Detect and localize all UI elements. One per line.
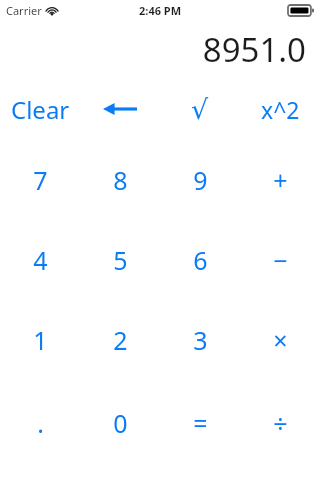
staticText: 7 [33,163,48,197]
button[interactable]: − [240,220,320,300]
staticText: . [37,406,44,440]
button[interactable]: ÷ [240,380,320,466]
staticText: 4 [33,243,48,277]
staticText: 3 [193,323,208,357]
button[interactable]: 8 [80,140,160,220]
button[interactable]: 5 [80,220,160,300]
button[interactable]: Backspace [80,78,160,140]
staticText: x^2 [261,94,300,125]
button[interactable]: 7 [0,140,80,220]
staticText: Clear [11,93,70,126]
staticText: = [193,406,208,440]
button[interactable]: × [240,300,320,380]
staticText: + [273,163,288,197]
staticText: 8 [113,163,128,197]
staticText: 2 [113,323,128,357]
button[interactable]: + [240,140,320,220]
button[interactable]: . [0,380,80,466]
staticText: 8951.0 [202,27,306,72]
button[interactable]: 2 [80,300,160,380]
staticText: − [273,243,288,277]
staticText: ÷ [273,406,288,440]
button[interactable]: 9 [160,140,240,220]
staticText: 9 [193,163,208,197]
button[interactable]: Clear [0,78,80,140]
staticText: 1 [33,323,48,357]
button[interactable]: 1 [0,300,80,380]
button[interactable]: 3 [160,300,240,380]
staticText: × [273,323,288,357]
button[interactable]: Square root [160,78,240,140]
staticText: √ [191,94,209,125]
button[interactable]: 0 [80,380,160,466]
button[interactable]: x^2 [240,78,320,140]
staticText: Carrier [6,3,42,18]
button[interactable]: 4 [0,220,80,300]
button[interactable]: 6 [160,220,240,300]
staticText: 6 [193,243,208,277]
staticText: 0 [113,406,128,440]
button[interactable]: = [160,380,240,466]
staticText: 5 [113,243,128,277]
staticText: 2:46 PM [139,3,182,18]
